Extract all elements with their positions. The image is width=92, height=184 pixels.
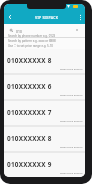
- staticText: 010XXXXXX 9: [7, 160, 52, 169]
- staticText: Search by pattern e.g. xxxx or 8888: [8, 39, 56, 43]
- staticText: Retail price RM8.00: [60, 67, 83, 70]
- button[interactable]: 010XXXXXX 6: [4, 75, 85, 99]
- staticText: 010: [16, 29, 22, 34]
- staticText: 010XXXXXX 8: [7, 134, 52, 143]
- button[interactable]: 010XXXXXX 7: [4, 101, 85, 125]
- staticText: 010XXXXXX 8: [7, 56, 52, 65]
- button[interactable]: 010XXXXXX 9: [4, 153, 85, 177]
- staticText: VIP SIXPACK: [35, 15, 59, 20]
- staticText: 010XXXXXX 7: [7, 108, 52, 117]
- button[interactable]: 010XXXXXX 8: [4, 49, 85, 73]
- staticText: 010XXXXXX 6: [7, 82, 52, 91]
- button[interactable]: 010XXXXXX 8: [4, 127, 85, 151]
- staticText: Retail price RM8.00: [60, 145, 83, 148]
- button[interactable]: Clear search: [73, 26, 81, 34]
- button[interactable]: More options: [76, 10, 85, 24]
- button[interactable]: Back: [4, 10, 15, 24]
- staticText: Use '-' to set price range e.g. 5-10: [8, 44, 54, 48]
- staticText: Search by phone number e.g. 0123: [8, 34, 56, 38]
- staticText: Retail price RM8.00: [60, 171, 83, 174]
- staticText: Retail price RM8.00: [60, 119, 83, 122]
- staticText: Retail price RM8.00: [60, 93, 83, 96]
